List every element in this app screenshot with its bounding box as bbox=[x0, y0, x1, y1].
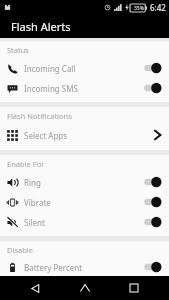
button[interactable]: Toggle bbox=[142, 82, 162, 94]
button[interactable]: Toggle bbox=[142, 261, 162, 273]
staticText: Vibrate bbox=[24, 197, 51, 208]
staticText: 6:42 bbox=[150, 2, 166, 13]
button[interactable]: Vibrate bbox=[0, 192, 169, 212]
button[interactable]: Home bbox=[70, 276, 100, 300]
button[interactable]: Toggle bbox=[142, 216, 162, 228]
button[interactable]: Incoming Call bbox=[0, 58, 169, 78]
button[interactable]: Select Apps bbox=[0, 124, 169, 146]
button[interactable]: Ring bbox=[0, 172, 169, 192]
button[interactable]: Incoming SMS bbox=[0, 78, 169, 98]
button[interactable]: Recent apps bbox=[119, 276, 149, 300]
staticText: Disable bbox=[7, 245, 33, 255]
staticText: Battery Percent bbox=[24, 262, 83, 273]
staticText: Enable For bbox=[7, 159, 45, 169]
staticText: Silent bbox=[24, 217, 45, 228]
button[interactable]: Toggle bbox=[142, 196, 162, 208]
button[interactable]: Toggle bbox=[142, 62, 162, 74]
staticText: Flash Notifications bbox=[7, 111, 72, 121]
button[interactable]: Silent bbox=[0, 212, 169, 232]
button[interactable]: Battery Percent bbox=[0, 258, 169, 276]
staticText: Incoming Call bbox=[24, 63, 76, 74]
button[interactable]: Back bbox=[20, 276, 50, 300]
staticText: Select Apps bbox=[24, 130, 68, 141]
staticText: 35% bbox=[134, 5, 144, 12]
staticText: Status bbox=[7, 45, 29, 55]
staticText: Ring bbox=[24, 177, 41, 188]
staticText: Flash Alerts bbox=[11, 19, 71, 34]
staticText: Incoming SMS bbox=[24, 83, 78, 94]
button[interactable]: Toggle bbox=[142, 176, 162, 188]
